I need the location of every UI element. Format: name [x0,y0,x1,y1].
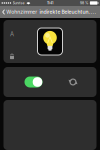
staticText: indirekte Beleuchtun.... [40,9,97,15]
staticText: 11:41 [47,1,53,5]
staticText: A [10,30,14,38]
button[interactable]: Light preview [37,28,62,55]
staticText: 98 % [80,1,88,5]
button[interactable]: Lock [6,53,17,59]
button[interactable]: Refresh [68,77,77,86]
button[interactable]: Power [24,76,42,87]
staticText: Wohnzimmer [6,9,37,15]
button[interactable]: Auto brightness [6,31,17,37]
button[interactable]: Wohnzimmer [0,6,40,18]
staticText: Sunrise [13,1,25,5]
